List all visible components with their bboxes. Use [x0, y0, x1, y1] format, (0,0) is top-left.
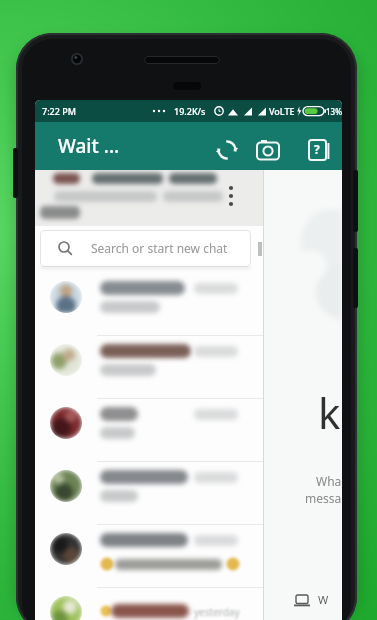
- staticText: ?: [314, 141, 320, 157]
- staticText: 13%: [326, 106, 342, 117]
- staticText: VoLTE: [269, 105, 295, 117]
- staticText: messa: [305, 490, 342, 506]
- button[interactable]: [35, 518, 263, 581]
- button[interactable]: [35, 329, 263, 392]
- button[interactable]: [225, 182, 237, 218]
- staticText: 19.2K/s: [174, 105, 206, 117]
- staticText: 7:22 PM: [42, 105, 76, 117]
- button[interactable]: [35, 266, 263, 329]
- button[interactable]: Search or start new chat: [40, 230, 251, 267]
- button[interactable]: [215, 138, 239, 162]
- staticText: yesterday: [194, 605, 240, 619]
- button[interactable]: [255, 137, 281, 163]
- button[interactable]: [35, 455, 263, 518]
- button[interactable]: [35, 392, 263, 455]
- button[interactable]: [35, 581, 263, 620]
- staticText: Wha: [316, 473, 342, 489]
- staticText: W: [318, 592, 329, 607]
- staticText: Search or start new chat: [91, 240, 228, 256]
- staticText: k: [318, 384, 341, 441]
- button[interactable]: ?: [306, 137, 332, 163]
- staticText: Wait ...: [58, 133, 120, 159]
- button[interactable]: [35, 170, 263, 620]
